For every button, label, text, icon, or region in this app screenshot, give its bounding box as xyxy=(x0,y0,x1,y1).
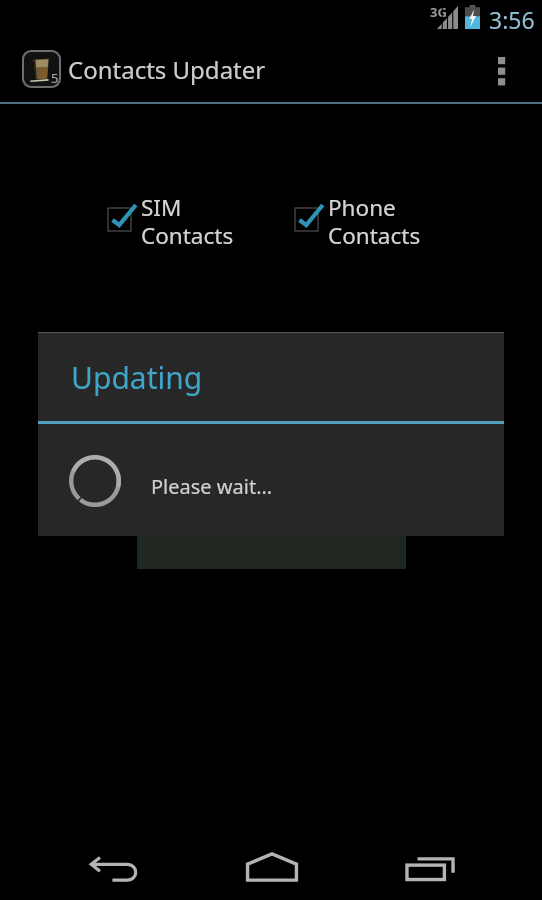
button[interactable] xyxy=(137,510,406,569)
staticText: 3:56 xyxy=(489,4,535,35)
button[interactable]: Recent apps xyxy=(382,822,478,900)
button[interactable]: SIM Contacts xyxy=(103,192,234,250)
staticText: Updating xyxy=(71,357,203,398)
button[interactable]: Home xyxy=(222,822,322,900)
button[interactable]: Back xyxy=(66,822,162,900)
staticText: 3G xyxy=(430,3,447,21)
staticText: Phone Contacts xyxy=(328,192,421,250)
button[interactable]: Phone Contacts xyxy=(290,192,421,250)
button[interactable]: More options xyxy=(486,42,542,104)
staticText: Please wait... xyxy=(151,473,273,500)
staticText: 5 xyxy=(51,69,59,86)
staticText: Contacts Updater xyxy=(68,53,266,86)
staticText: SIM Contacts xyxy=(141,192,234,250)
